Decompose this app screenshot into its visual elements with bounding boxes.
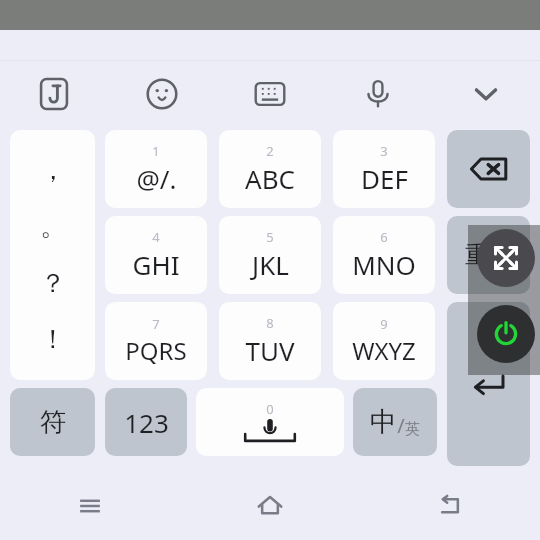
button[interactable]: Voice input [324,61,432,126]
staticText: 3 [380,142,388,160]
button[interactable]: JKL [219,216,321,294]
staticText: 123 [124,405,169,440]
button[interactable]: Home [180,471,360,540]
staticText: TUV [245,333,295,368]
button[interactable]: punctuation [10,130,95,380]
button[interactable]: Keyboard layout [216,61,324,126]
button[interactable]: Fullscreen [477,229,535,287]
button[interactable]: 中英 switch [353,388,437,456]
button[interactable]: TUV [219,302,321,380]
staticText: JKL [252,247,289,282]
staticText: ABC [245,161,295,196]
button[interactable]: MNO [333,216,435,294]
staticText: 4 [152,228,160,246]
staticText: 0 [266,400,274,418]
staticText: ， [40,154,66,187]
staticText: 1 [152,142,160,160]
staticText: 7 [152,315,160,333]
staticText: ？ [40,267,66,300]
staticText: MNO [352,247,416,282]
staticText: 5 [266,228,274,246]
button[interactable]: Recents [0,471,180,540]
button[interactable]: 123 [105,388,187,456]
button[interactable]: ABC [219,130,321,208]
staticText: 6 [380,228,388,246]
staticText: DEF [361,161,408,196]
button[interactable]: @/. [105,130,207,208]
staticText: 英 [405,420,420,439]
button[interactable]: Back [360,471,540,540]
button[interactable]: Input method [0,61,108,126]
staticText: 。 [40,210,66,243]
staticText: 符 [40,406,66,439]
staticText: 2 [266,142,274,160]
button[interactable]: Backspace [447,130,530,208]
button[interactable]: DEF [333,130,435,208]
staticText: 8 [266,314,274,332]
staticText: @/. [136,161,177,196]
button[interactable]: Enter [447,302,530,466]
staticText: 重输 [465,240,513,270]
button[interactable]: GHI [105,216,207,294]
button[interactable]: Hide keyboard [432,61,540,126]
staticText: PQRS [125,334,187,367]
staticText: ！ [40,323,66,356]
button[interactable]: 符 [10,388,95,456]
button[interactable]: PQRS [105,302,207,380]
button[interactable]: Power [477,305,535,363]
staticText: / [397,412,405,439]
button[interactable]: Emoji [108,61,216,126]
staticText: 中 [370,405,397,439]
button[interactable]: 重输 [447,216,530,294]
staticText: GHI [132,247,180,282]
button[interactable]: WXYZ [333,302,435,380]
staticText: WXYZ [352,334,416,367]
staticText: 9 [380,315,388,333]
button[interactable]: Space / voice input [196,388,344,456]
